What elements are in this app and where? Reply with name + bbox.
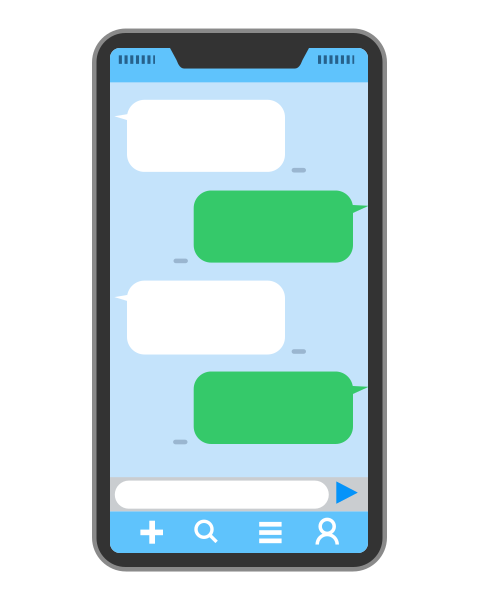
button[interactable]: Menu: [242, 511, 298, 553]
button[interactable]: Search: [177, 511, 233, 553]
button[interactable]: New message: [124, 511, 180, 553]
button[interactable]: Profile: [298, 511, 354, 553]
